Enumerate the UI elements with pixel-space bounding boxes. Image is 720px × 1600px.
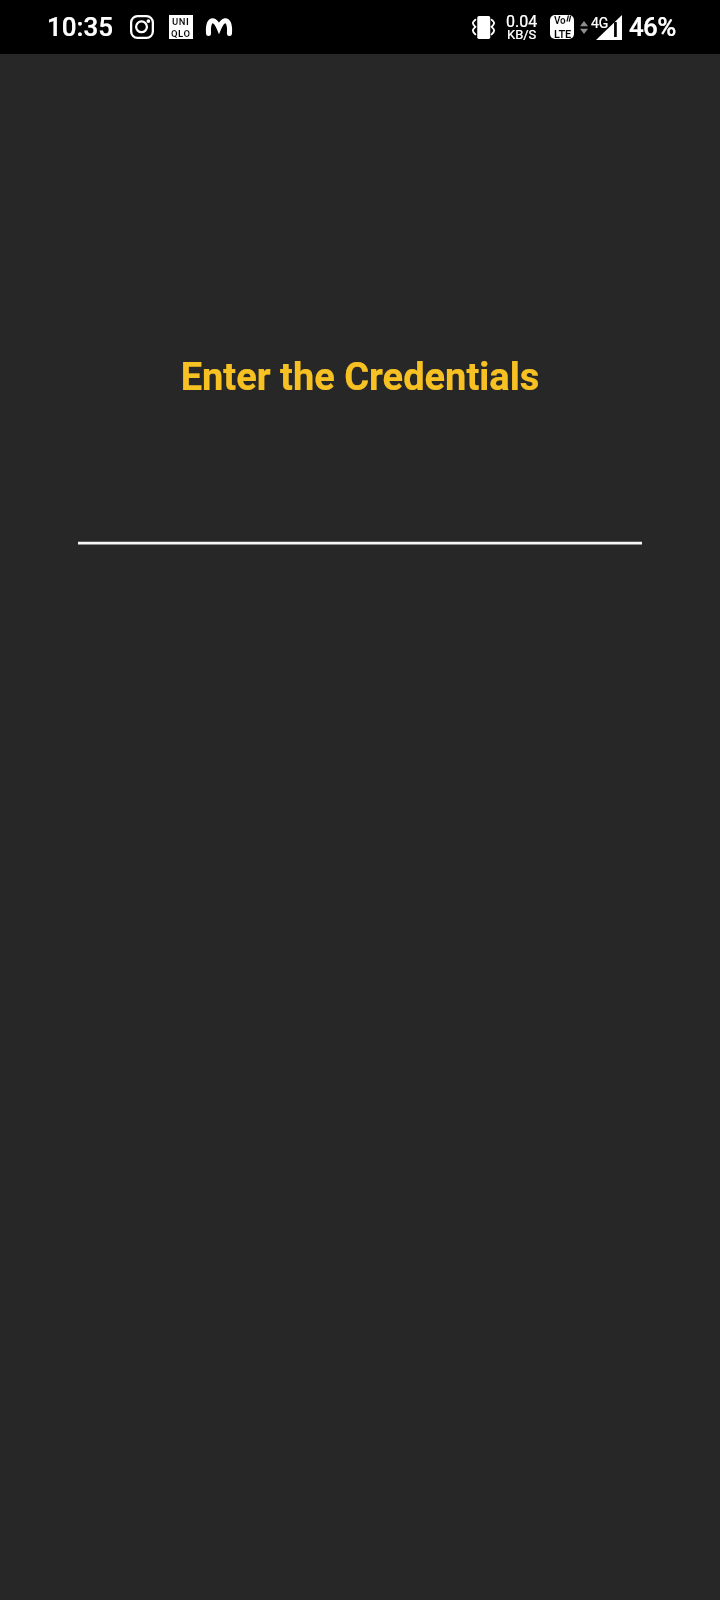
other: Instagram notification	[130, 15, 154, 39]
staticText: 46%	[629, 12, 676, 42]
staticText: Vo	[554, 15, 566, 27]
staticText: 10:35	[47, 12, 114, 42]
staticText: QLO	[171, 28, 191, 39]
other: 4G signal strength	[580, 15, 622, 40]
staticText: UNI	[172, 16, 190, 27]
other: Myntra notification	[206, 18, 232, 36]
staticText: 0.04	[506, 12, 538, 31]
other: UNIQLO notification	[169, 15, 193, 39]
staticText: 4G	[591, 15, 609, 31]
staticText: KB/S	[507, 27, 537, 42]
other: VoLTE	[550, 15, 574, 39]
other: Vibrate mode	[471, 16, 496, 39]
button[interactable]	[78, 470, 642, 546]
staticText: LTE	[554, 28, 571, 39]
staticText: Enter the Credentials	[0, 355, 720, 400]
